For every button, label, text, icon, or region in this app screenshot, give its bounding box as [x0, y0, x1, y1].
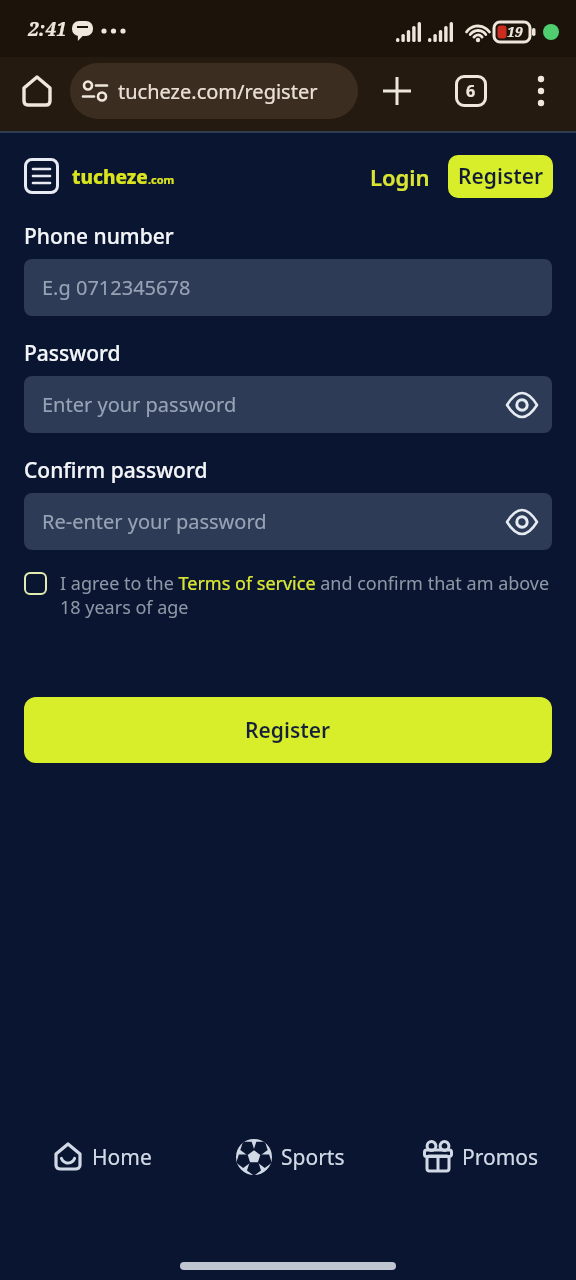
staticText: 19 — [507, 22, 523, 41]
staticText: 2:41 — [28, 16, 67, 42]
button[interactable] — [21, 74, 53, 108]
staticText: Confirm password — [24, 456, 208, 485]
staticText: Enter your password — [42, 391, 237, 418]
staticText: tucheze.com/register — [118, 78, 318, 105]
staticText: Home — [92, 1143, 152, 1172]
button[interactable]: Register — [24, 697, 552, 763]
staticText: 6 — [466, 80, 476, 102]
staticText: Password — [24, 339, 121, 368]
button[interactable]: Sports — [236, 1139, 345, 1175]
staticText: Register — [245, 716, 331, 745]
button[interactable]: Promos — [423, 1141, 539, 1173]
staticText: Promos — [462, 1143, 539, 1172]
button[interactable]: Login — [370, 162, 430, 192]
button[interactable]: 6 — [455, 75, 487, 107]
staticText: E.g 0712345678 — [42, 274, 191, 301]
button[interactable]: Home — [53, 1141, 152, 1173]
button[interactable] — [534, 74, 548, 108]
staticText: Sports — [281, 1143, 345, 1172]
staticText: Register — [458, 162, 544, 191]
button[interactable] — [383, 77, 411, 105]
staticText: Phone number — [24, 222, 174, 251]
staticText: tucheze.com — [72, 164, 175, 190]
button[interactable]: Enter your password — [24, 376, 552, 433]
button[interactable]: Register — [448, 155, 553, 198]
button[interactable] — [24, 572, 47, 595]
button[interactable]: Re-enter your password — [24, 493, 552, 550]
button[interactable]: E.g 0712345678 — [24, 259, 552, 316]
button[interactable] — [24, 158, 59, 194]
button[interactable]: tucheze.com/register — [70, 63, 358, 119]
staticText: I agree to the Terms of service and conf… — [60, 571, 550, 619]
staticText: Re-enter your password — [42, 508, 267, 535]
